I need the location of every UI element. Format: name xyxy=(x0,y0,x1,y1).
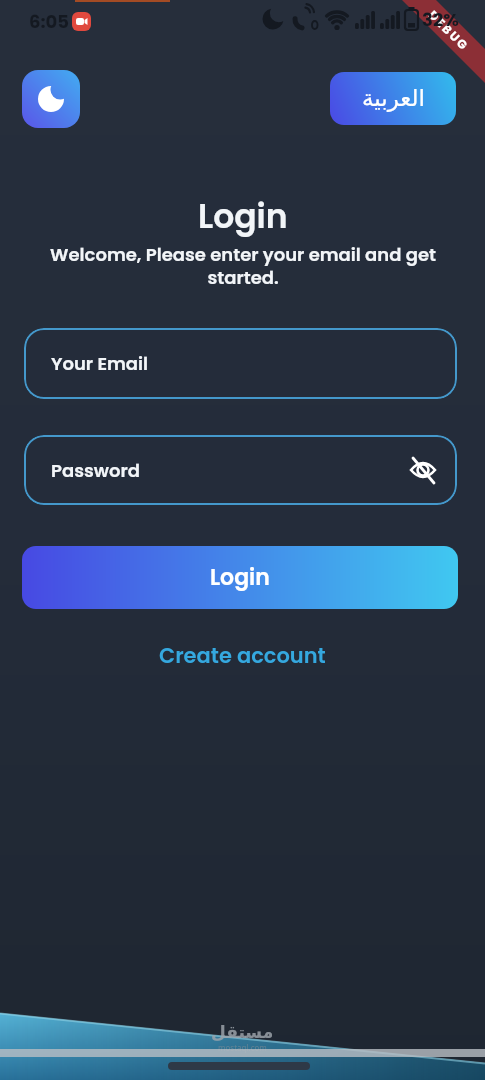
staticText: Password xyxy=(51,458,140,483)
button[interactable] xyxy=(22,70,80,128)
staticText: mostaql.com xyxy=(218,1042,267,1053)
staticText: Login xyxy=(198,193,288,239)
staticText: مستقل xyxy=(211,1022,274,1042)
staticText: Your Email xyxy=(51,351,149,376)
staticText: DEBUG xyxy=(425,7,473,55)
button[interactable]: العربية xyxy=(330,72,456,125)
staticText: 6:05 xyxy=(29,9,70,34)
staticText: 32% xyxy=(422,7,459,32)
staticText: Create account xyxy=(159,641,326,670)
button[interactable]: Your Email xyxy=(24,328,457,399)
button[interactable]: Create account xyxy=(159,641,326,670)
staticText: العربية xyxy=(362,85,425,112)
staticText: Welcome, Please enter your email and get… xyxy=(50,242,436,290)
staticText: Login xyxy=(210,562,270,593)
button[interactable]: Login xyxy=(22,546,458,609)
button[interactable]: Password xyxy=(24,435,457,505)
